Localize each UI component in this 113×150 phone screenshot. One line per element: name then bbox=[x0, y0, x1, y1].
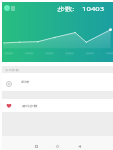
staticText: 步数: 10403 bbox=[57, 5, 104, 13]
button[interactable]: 微信步数 bbox=[2, 99, 113, 112]
staticText: 今日步数 bbox=[5, 68, 20, 71]
button[interactable]: Back bbox=[69, 136, 89, 150]
staticText: 新增 bbox=[21, 80, 29, 84]
button[interactable]: 新增 bbox=[2, 73, 113, 91]
button[interactable]: Home bbox=[47, 136, 67, 150]
staticText: 微信步数 bbox=[22, 104, 38, 108]
button[interactable]: Recents bbox=[26, 136, 46, 150]
